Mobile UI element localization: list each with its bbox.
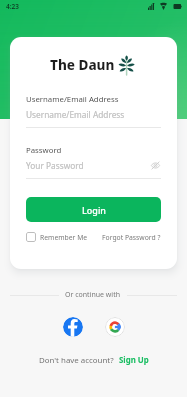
button[interactable]: Remember Me: [26, 232, 88, 242]
staticText: Username/Email Address: [26, 109, 125, 120]
staticText: Don't have account?: [39, 355, 114, 366]
staticText: The Daun: [50, 56, 115, 74]
button[interactable]: Sign Up: [119, 355, 149, 366]
staticText: Remember Me: [40, 233, 88, 242]
button[interactable]: Forgot Password ?: [102, 233, 161, 242]
staticText: Login: [82, 204, 106, 216]
staticText: Your Password: [26, 160, 84, 171]
staticText: Or continue with: [65, 290, 121, 300]
button[interactable]: Login: [26, 197, 161, 222]
staticText: Password: [26, 145, 62, 156]
button[interactable]: Continue with Facebook: [63, 317, 83, 337]
staticText: Username/Email Address: [26, 94, 119, 105]
button[interactable]: Show password: [149, 159, 161, 171]
staticText: 4:23: [6, 2, 19, 11]
button[interactable]: Continue with Google: [105, 317, 125, 337]
